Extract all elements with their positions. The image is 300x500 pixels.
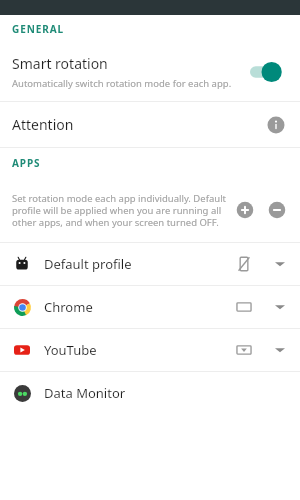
- staticText: GENERAL: [12, 22, 64, 36]
- staticText: Chrome: [44, 298, 234, 316]
- button[interactable]: Attention: [0, 102, 300, 147]
- button[interactable]: Default profile: [0, 243, 300, 285]
- staticText: Automatically switch rotation mode for e…: [12, 77, 232, 90]
- staticText: Smart rotation: [12, 54, 108, 73]
- button[interactable]: Remove app: [268, 201, 286, 219]
- staticText: Data Monitor: [44, 384, 234, 402]
- button[interactable]: YouTube: [0, 329, 300, 371]
- button[interactable]: Chrome: [0, 286, 300, 328]
- staticText: Set rotation mode each app individually.…: [12, 192, 228, 229]
- staticText: Default profile: [44, 255, 234, 273]
- button[interactable]: Add app: [236, 201, 254, 219]
- button[interactable]: Information: [266, 115, 286, 135]
- button[interactable]: Smart rotation: [0, 43, 300, 101]
- button[interactable]: Expand YouTube: [272, 342, 288, 358]
- button[interactable]: Smart rotation toggle: [250, 61, 290, 83]
- staticText: Attention: [12, 115, 266, 134]
- staticText: YouTube: [44, 341, 234, 359]
- button[interactable]: Expand Chrome: [272, 299, 288, 315]
- button[interactable]: Expand Default profile: [272, 256, 288, 272]
- staticText: APPS: [12, 156, 41, 170]
- button[interactable]: Data Monitor: [0, 372, 300, 414]
